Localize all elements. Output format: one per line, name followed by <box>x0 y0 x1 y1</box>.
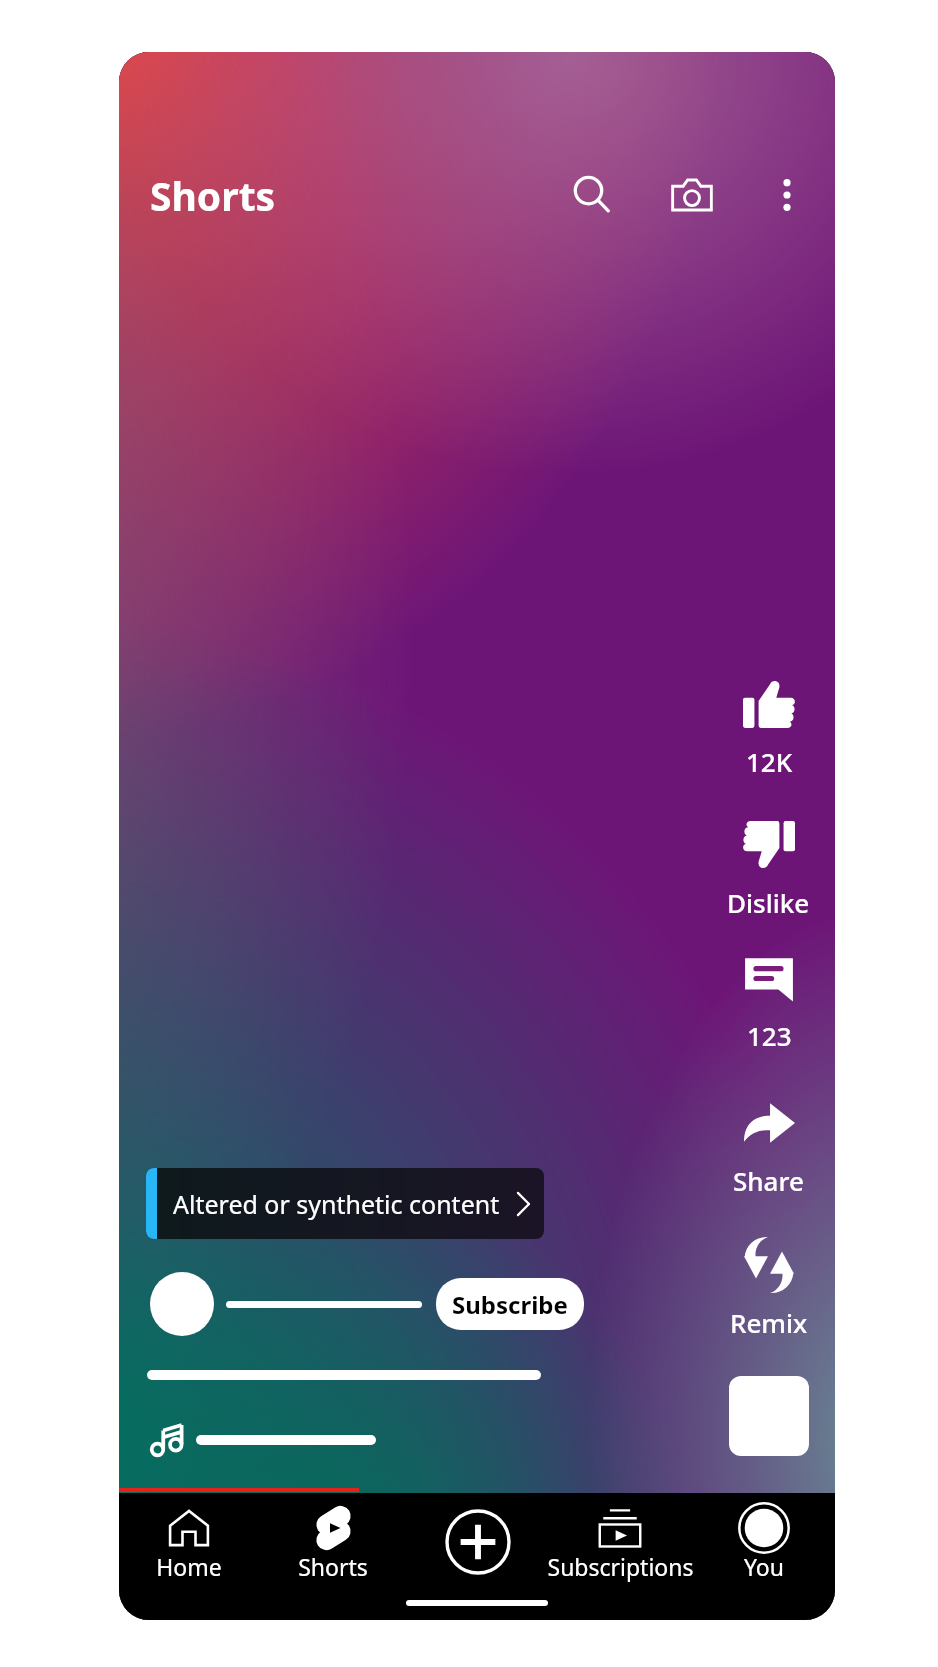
staticText: 123 <box>747 1018 792 1053</box>
button[interactable]: Altered or synthetic content <box>146 1168 544 1239</box>
button[interactable]: Dislike <box>727 818 810 920</box>
staticText: Subscriptions <box>547 1551 694 1582</box>
button[interactable]: Share <box>733 1096 804 1198</box>
button[interactable]: More options <box>755 163 819 227</box>
staticText: Dislike <box>727 885 810 920</box>
button[interactable]: Sound thumbnail <box>729 1376 809 1456</box>
staticText: Shorts <box>298 1551 368 1582</box>
button[interactable]: Channel avatar <box>150 1272 214 1336</box>
button[interactable]: Search <box>560 163 624 227</box>
button[interactable]: 123 <box>742 951 796 1053</box>
button[interactable]: Subscriptions <box>548 1493 692 1582</box>
button[interactable]: Shorts <box>259 1493 407 1582</box>
button[interactable]: You <box>692 1493 835 1582</box>
staticText: Shorts <box>150 169 276 222</box>
button[interactable]: Subscribe <box>436 1278 584 1330</box>
staticText: You <box>744 1551 784 1582</box>
staticText: Home <box>156 1551 222 1582</box>
staticText: Altered or synthetic content <box>173 1187 500 1221</box>
button[interactable]: Create <box>407 1493 548 1582</box>
button[interactable]: Remix <box>730 1238 808 1340</box>
staticText: Subscribe <box>452 1288 568 1321</box>
button[interactable]: 12K <box>742 677 796 779</box>
staticText: 12K <box>746 744 793 779</box>
button[interactable]: Home <box>119 1493 259 1582</box>
button[interactable]: Camera <box>660 163 724 227</box>
staticText: Share <box>733 1163 804 1198</box>
staticText: Remix <box>730 1305 808 1340</box>
